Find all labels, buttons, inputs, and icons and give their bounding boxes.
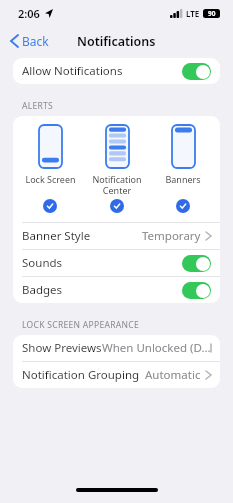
staticText: When Unlocked (D… — [102, 340, 211, 356]
staticText: Badges — [22, 282, 63, 298]
staticText: Allow Notifications — [22, 63, 123, 79]
staticText: Banner Style — [22, 228, 91, 244]
button[interactable]: Toggle on — [182, 282, 211, 299]
button[interactable]: Toggle on — [182, 63, 211, 80]
button[interactable]: Selected — [110, 199, 124, 213]
staticText: LTE — [186, 8, 200, 19]
staticText: Automatic — [145, 367, 201, 383]
button[interactable]: Notification Grouping — [13, 362, 220, 388]
button[interactable]: Sounds — [13, 250, 220, 276]
button[interactable]: Selected — [176, 199, 190, 213]
button[interactable]: Back — [8, 30, 52, 52]
button[interactable]: Toggle on — [182, 255, 211, 272]
button[interactable]: Show Previews — [13, 335, 220, 361]
button[interactable]: Selected — [43, 199, 57, 213]
staticText: Back — [22, 33, 49, 49]
button[interactable]: Banner Style — [13, 223, 220, 249]
staticText: Sounds — [22, 255, 63, 271]
staticText: Notification Grouping — [22, 367, 140, 383]
staticText: Lock Screen — [25, 173, 76, 185]
staticText: 90 — [208, 9, 216, 18]
button[interactable]: Allow Notifications — [13, 58, 220, 84]
button[interactable]: Badges — [13, 277, 220, 303]
staticText: Notifications — [77, 33, 156, 50]
staticText: Banners — [165, 173, 201, 185]
staticText: LOCK SCREEN APPEARANCE — [22, 319, 139, 331]
staticText: Temporary — [142, 228, 201, 244]
staticText: Notification Center — [92, 173, 142, 196]
staticText: 2:06 — [18, 6, 40, 21]
staticText: Show Previews — [22, 340, 102, 356]
staticText: ALERTS — [22, 100, 54, 112]
